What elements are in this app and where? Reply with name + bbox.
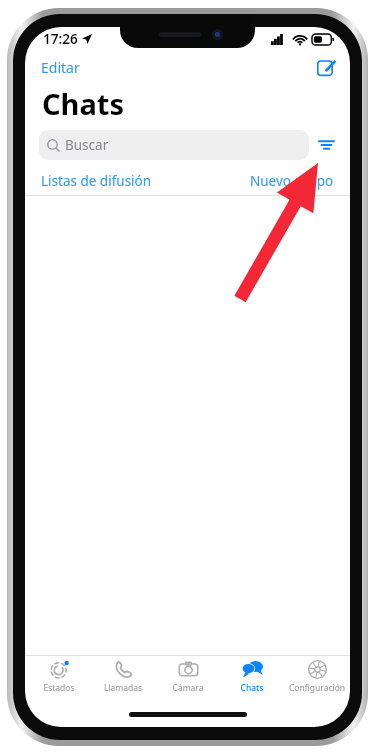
button[interactable]: Buscar: [39, 130, 309, 160]
button[interactable]: Estados: [28, 659, 90, 705]
staticText: Llamadas: [92, 682, 154, 694]
staticText: Editar: [41, 58, 80, 77]
staticText: Chats: [42, 84, 124, 123]
staticText: Cámara: [157, 682, 219, 694]
staticText: 17:26: [43, 30, 78, 48]
button[interactable]: Nuevo grupo: [250, 169, 334, 193]
button[interactable]: Filtrar chats: [309, 133, 336, 157]
button[interactable]: Nuevo chat: [303, 54, 350, 81]
button[interactable]: Configuración: [286, 659, 348, 705]
staticText: Listas de difusión: [41, 172, 152, 190]
staticText: Configuración: [286, 682, 348, 694]
button[interactable]: Chats: [221, 659, 283, 705]
button[interactable]: Editar: [25, 53, 96, 82]
staticText: Nuevo grupo: [250, 172, 334, 190]
button[interactable]: Listas de difusión: [41, 169, 152, 193]
staticText: Estados: [28, 682, 90, 694]
staticText: Buscar: [65, 136, 109, 154]
staticText: Chats: [221, 682, 283, 694]
button[interactable]: Cámara: [157, 659, 219, 705]
button[interactable]: Llamadas: [92, 659, 154, 705]
